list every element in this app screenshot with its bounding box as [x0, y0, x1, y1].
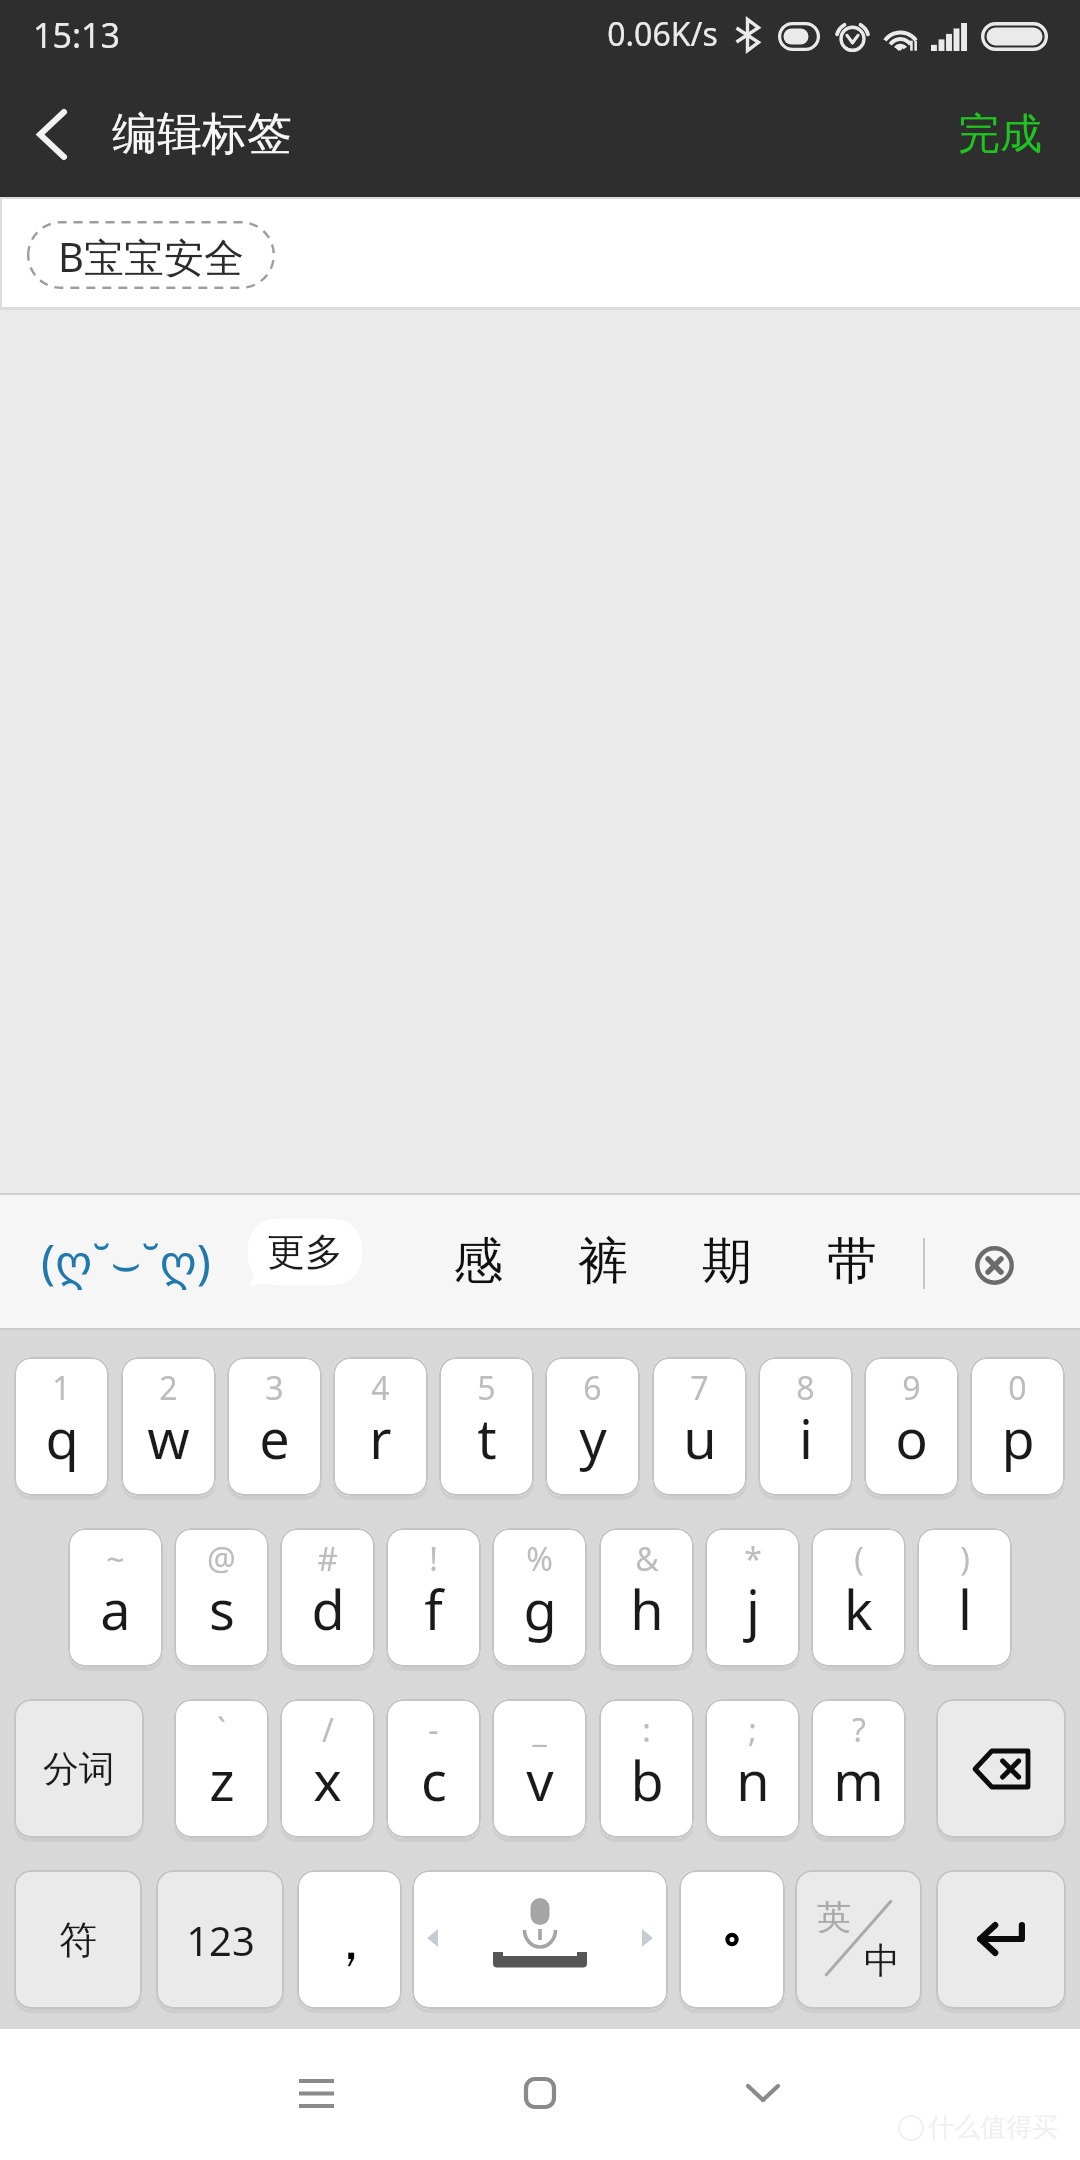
staticText: q	[45, 1401, 79, 1475]
staticText: %	[526, 1537, 553, 1581]
staticText: ~	[106, 1537, 125, 1581]
button[interactable]: 1	[14, 1357, 109, 1496]
button[interactable]	[679, 1870, 785, 2009]
staticText: B宝宝安全	[58, 229, 244, 284]
staticText: *	[744, 1537, 762, 1581]
button[interactable]: 6	[545, 1357, 640, 1496]
staticText: _	[532, 1708, 547, 1752]
button[interactable]: 更多	[248, 1219, 362, 1285]
staticText: 裤	[578, 1230, 628, 1293]
button[interactable]: _	[492, 1699, 587, 1838]
staticText: 什么值得买	[928, 2111, 1058, 2144]
button[interactable]: &	[599, 1528, 694, 1667]
staticText: p	[1001, 1401, 1035, 1475]
staticText: ;	[748, 1708, 757, 1752]
button[interactable]: :	[599, 1699, 694, 1838]
staticText: k	[844, 1572, 873, 1646]
staticText: 15:13	[33, 12, 120, 58]
staticText: s	[209, 1572, 235, 1646]
staticText: :	[642, 1708, 651, 1752]
button[interactable]: ?	[811, 1699, 906, 1838]
staticText: 6	[583, 1366, 602, 1410]
button[interactable]: 0	[970, 1357, 1065, 1496]
staticText: 分词	[43, 1746, 115, 1791]
button[interactable]: Hide keyboard	[705, 2035, 821, 2151]
staticText: 英	[817, 1896, 851, 1939]
staticText: (ღ˘⌣˘ღ)	[41, 1229, 211, 1293]
staticText: ，	[323, 1905, 379, 1976]
button[interactable]: *	[705, 1528, 800, 1667]
button[interactable]: 5	[439, 1357, 534, 1496]
staticText: )	[960, 1537, 970, 1581]
staticText: h	[630, 1572, 664, 1646]
button[interactable]: 4	[333, 1357, 428, 1496]
button[interactable]: (	[811, 1528, 906, 1667]
button[interactable]: Close keyboard	[944, 1215, 1044, 1315]
button[interactable]: Home	[482, 2035, 598, 2151]
staticText: 8	[796, 1366, 815, 1410]
button[interactable]: 2	[121, 1357, 216, 1496]
staticText: j	[746, 1572, 760, 1646]
button[interactable]: -	[386, 1699, 481, 1838]
staticText: l	[958, 1572, 972, 1646]
staticText: ?	[852, 1708, 866, 1752]
button[interactable]: !	[386, 1528, 481, 1667]
button[interactable]: 期	[671, 1193, 783, 1330]
button[interactable]: @	[174, 1528, 269, 1667]
button[interactable]: 7	[652, 1357, 747, 1496]
staticText: 7	[690, 1366, 709, 1410]
staticText: f	[424, 1572, 443, 1646]
button[interactable]: 符	[14, 1870, 142, 2009]
button[interactable]: 裤	[547, 1193, 659, 1330]
button[interactable]: ，	[297, 1870, 402, 2009]
button[interactable]: Back	[0, 70, 106, 197]
staticText: 期	[702, 1230, 752, 1293]
staticText: m	[833, 1743, 884, 1817]
staticText: y	[579, 1401, 607, 1475]
button[interactable]: 分词	[14, 1699, 144, 1838]
button[interactable]: 8	[758, 1357, 853, 1496]
staticText: (	[854, 1537, 864, 1581]
button[interactable]: 3	[227, 1357, 322, 1496]
button[interactable]: Enter	[936, 1870, 1066, 2009]
staticText: u	[683, 1401, 717, 1475]
staticText: 3	[265, 1366, 284, 1410]
button[interactable]: ~	[68, 1528, 163, 1667]
staticText: 0.06K/s	[607, 12, 718, 56]
button[interactable]: 123	[156, 1870, 284, 2009]
staticText: b	[630, 1743, 664, 1817]
staticText: `	[217, 1708, 226, 1752]
staticText: 编辑标签	[112, 106, 292, 163]
staticText: /	[322, 1708, 334, 1752]
button[interactable]: Backspace	[936, 1699, 1066, 1838]
staticText: @	[207, 1537, 236, 1581]
staticText: g	[523, 1572, 557, 1646]
staticText: d	[311, 1572, 345, 1646]
button[interactable]: `	[174, 1699, 269, 1838]
staticText: 0	[1008, 1366, 1027, 1410]
button[interactable]: %	[492, 1528, 587, 1667]
button[interactable]: 完成	[918, 70, 1080, 197]
button[interactable]: Emoticons	[35, 1206, 217, 1316]
button[interactable]: ;	[705, 1699, 800, 1838]
staticText: 完成	[958, 108, 1042, 161]
button[interactable]: Space	[412, 1870, 668, 2009]
staticText: 带	[827, 1230, 877, 1293]
button[interactable]: 9	[864, 1357, 959, 1496]
button[interactable]: B宝宝安全	[27, 221, 275, 289]
staticText: -	[428, 1708, 439, 1752]
button[interactable]: 带	[796, 1193, 908, 1330]
button[interactable]: 感	[422, 1193, 534, 1330]
button[interactable]: 英	[795, 1870, 922, 2009]
button[interactable]: )	[917, 1528, 1012, 1667]
staticText: o	[895, 1401, 928, 1475]
staticText: 4	[371, 1366, 390, 1410]
button[interactable]: Menu	[258, 2035, 374, 2151]
staticText: t	[477, 1401, 497, 1475]
staticText: #	[317, 1537, 338, 1581]
staticText: r	[369, 1401, 392, 1475]
button[interactable]: /	[280, 1699, 375, 1838]
staticText: &	[635, 1537, 659, 1581]
button[interactable]: #	[280, 1528, 375, 1667]
staticText: z	[209, 1743, 235, 1817]
